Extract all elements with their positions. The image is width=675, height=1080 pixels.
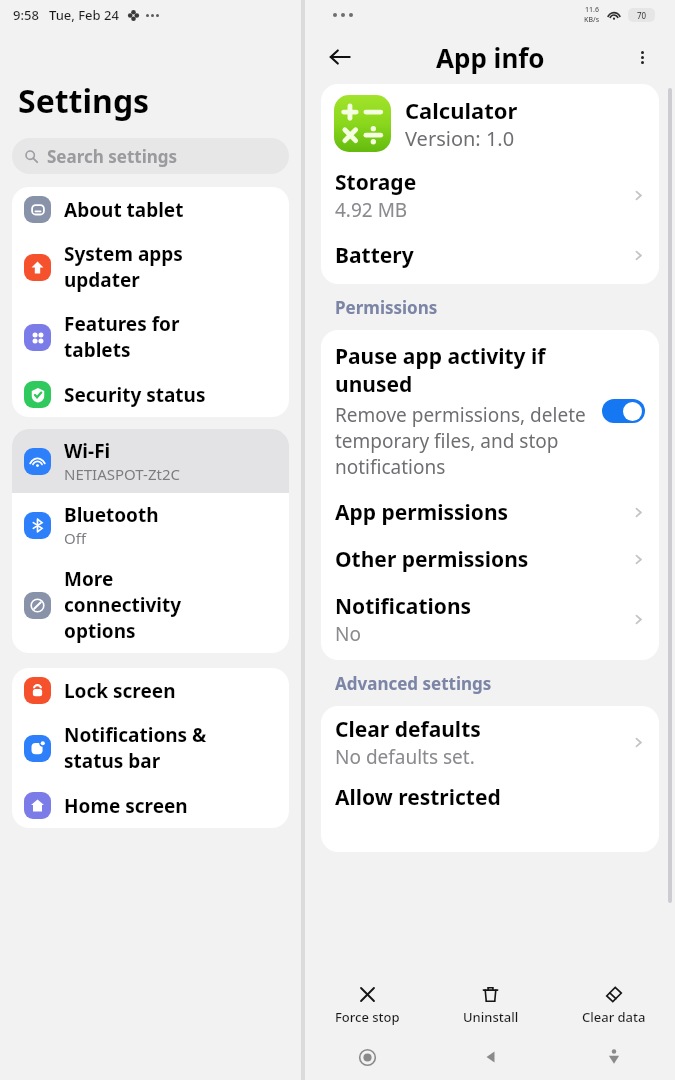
staticText: Permissions	[335, 296, 438, 319]
staticText: No defaults set.	[335, 744, 475, 770]
button[interactable]: Allow restricted	[321, 779, 659, 812]
button[interactable]: Pause app activity if unused	[321, 330, 659, 489]
staticText: Lock screen	[64, 678, 176, 704]
button[interactable]: Notifications & status bar	[12, 713, 289, 783]
button[interactable]: Home	[305, 1034, 429, 1080]
staticText: Advanced settings	[335, 672, 492, 695]
staticText: Settings	[18, 79, 150, 123]
staticText: About tablet	[64, 197, 184, 223]
staticText: Battery	[335, 241, 414, 270]
button[interactable]: System apps updater	[12, 232, 289, 302]
button[interactable]: Bluetooth	[12, 493, 289, 557]
staticText: 9:58	[13, 6, 39, 24]
staticText: Wi-Fi	[64, 438, 111, 464]
staticText: Storage	[335, 168, 417, 197]
button[interactable]: Calculator	[321, 84, 659, 159]
staticText: More connectivity options	[64, 566, 182, 644]
staticText: Bluetooth	[64, 502, 159, 528]
staticText: Remove permissions, delete temporary fil…	[335, 402, 590, 480]
button[interactable]: Lock screen	[12, 668, 289, 713]
button[interactable]: Security status	[12, 372, 289, 417]
button[interactable]: Hide keyboard	[552, 1034, 675, 1080]
staticText: Tue, Feb 24	[49, 6, 119, 24]
button[interactable]: App permissions	[321, 489, 659, 536]
staticText: Notifications & status bar	[64, 722, 207, 774]
staticText: KB/s	[584, 15, 600, 25]
staticText: Uninstall	[463, 1008, 519, 1026]
button[interactable]: Back	[429, 1034, 552, 1080]
staticText: Search settings	[47, 145, 178, 168]
button[interactable]: Clear data	[552, 978, 675, 1034]
staticText: Security status	[64, 382, 206, 408]
staticText: Home screen	[64, 793, 188, 819]
staticText: Calculator	[405, 95, 518, 125]
button[interactable]: Clear defaults	[321, 706, 659, 779]
button[interactable]: More connectivity options	[12, 557, 289, 653]
button[interactable]: Force stop	[305, 978, 429, 1034]
button[interactable]: More options	[623, 38, 661, 76]
staticText: Features for tablets	[64, 311, 180, 363]
staticText: 4.92 MB	[335, 197, 408, 223]
button[interactable]: Home screen	[12, 783, 289, 828]
button[interactable]: Features for tablets	[12, 302, 289, 372]
staticText: 70	[637, 10, 647, 21]
staticText: No	[335, 621, 361, 647]
button[interactable]: Battery	[321, 232, 659, 279]
button[interactable]: Search settings	[12, 138, 289, 174]
button[interactable]: Pause app activity toggle	[602, 399, 645, 423]
staticText: Clear defaults	[335, 715, 481, 744]
staticText: 11.6	[585, 5, 599, 15]
staticText: Other permissions	[335, 545, 529, 574]
staticText: Pause app activity if unused	[335, 342, 590, 398]
button[interactable]: Storage	[321, 159, 659, 232]
staticText: Notifications	[335, 592, 472, 621]
button[interactable]: Uninstall	[429, 978, 552, 1034]
button[interactable]: Other permissions	[321, 536, 659, 583]
staticText: Allow restricted	[335, 783, 501, 812]
staticText: NETIASPOT-Zt2C	[64, 464, 180, 484]
staticText: Force stop	[335, 1008, 400, 1026]
staticText: System apps updater	[64, 241, 183, 293]
button[interactable]: Back	[319, 36, 361, 78]
staticText: App permissions	[335, 498, 509, 527]
staticText: Clear data	[582, 1008, 646, 1026]
staticText: Off	[64, 528, 87, 548]
staticText: App info	[436, 40, 545, 75]
button[interactable]: Notifications	[321, 583, 659, 656]
staticText: Version: 1.0	[405, 125, 515, 152]
button[interactable]: Wi-Fi	[12, 429, 289, 493]
button[interactable]: About tablet	[12, 187, 289, 232]
